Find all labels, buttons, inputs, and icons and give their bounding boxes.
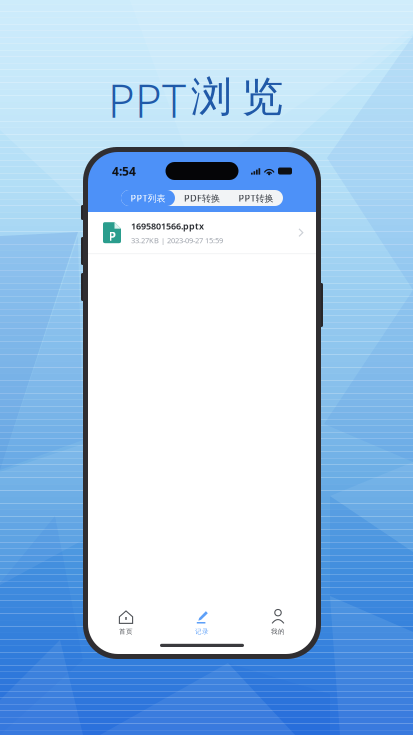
button[interactable]: 首页	[88, 609, 164, 636]
staticText: T	[162, 70, 186, 130]
button[interactable]: PPT转换	[229, 190, 283, 206]
staticText: PPT列表	[130, 192, 165, 204]
staticText: 我的	[271, 628, 285, 636]
button[interactable]: PDF转换	[175, 190, 229, 206]
staticText: 1695801566.pptx	[131, 220, 204, 232]
staticText: PPT转换	[238, 192, 273, 204]
button[interactable]: PPT列表	[121, 190, 175, 206]
staticText: P	[135, 70, 162, 130]
staticText: 览	[242, 71, 283, 122]
button[interactable]: P	[88, 212, 316, 253]
button[interactable]: 记录	[164, 609, 240, 636]
staticText: 4:54	[112, 163, 136, 179]
staticText: 浏	[191, 71, 232, 122]
staticText: PDF转换	[184, 192, 220, 204]
staticText: P	[108, 228, 115, 244]
staticText: 33.27KB | 2023-09-27 15:59	[131, 235, 223, 245]
staticText: P	[108, 70, 135, 130]
button[interactable]: 我的	[240, 609, 316, 636]
staticText: 首页	[119, 628, 133, 636]
staticText: 记录	[195, 628, 209, 636]
